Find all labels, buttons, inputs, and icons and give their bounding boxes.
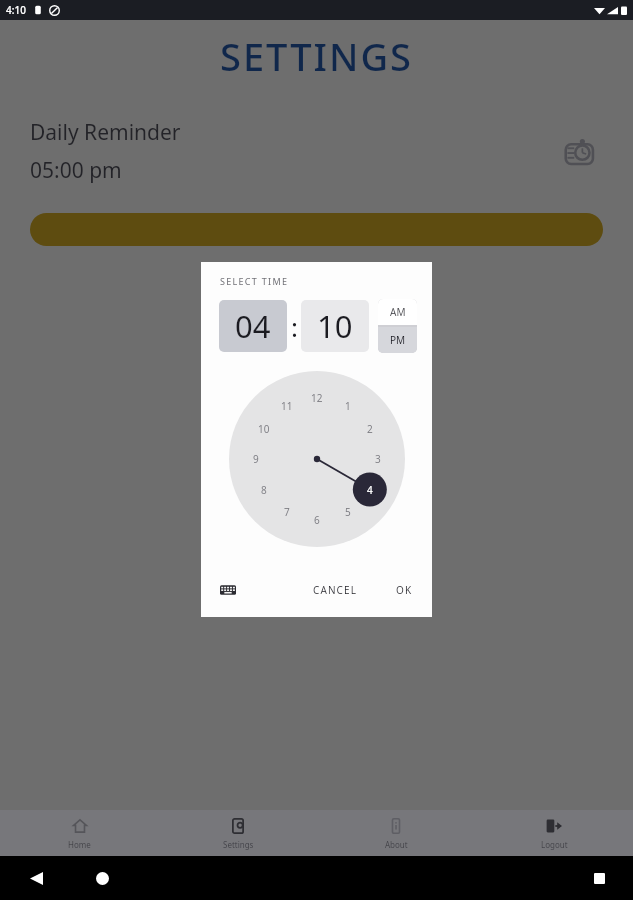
staticText: SETTINGS	[220, 30, 414, 82]
staticText: Settings	[223, 839, 254, 850]
staticText: 1	[345, 399, 351, 413]
staticText: Home	[68, 839, 91, 850]
staticText: 4	[367, 483, 373, 497]
staticText: 10	[317, 305, 353, 347]
button[interactable]: 04	[219, 300, 287, 352]
button[interactable]: Logout	[475, 810, 633, 856]
button[interactable]: Home	[0, 810, 159, 856]
button[interactable]: Switch to keyboard input	[217, 579, 239, 601]
staticText: SELECT TIME	[220, 275, 289, 287]
staticText: 05:00 pm	[30, 156, 122, 185]
button[interactable]	[30, 213, 603, 246]
staticText: AM	[390, 305, 406, 319]
staticText: 6	[314, 513, 320, 527]
staticText: 4:10	[6, 3, 26, 17]
staticText: 7	[284, 505, 290, 519]
button[interactable]: Recent apps	[587, 866, 611, 890]
staticText: Logout	[541, 839, 568, 850]
staticText: 3	[375, 452, 381, 466]
button[interactable]: CANCEL	[313, 583, 358, 597]
button[interactable]: Daily Reminder	[30, 112, 603, 190]
staticText: 2	[367, 422, 373, 436]
staticText: 8	[261, 483, 267, 497]
button[interactable]: About	[317, 810, 475, 856]
button[interactable]: AM	[378, 299, 417, 325]
staticText: 9	[253, 452, 259, 466]
staticText: Daily Reminder	[30, 118, 181, 147]
button[interactable]: PM	[378, 327, 417, 353]
button[interactable]: Home	[90, 866, 114, 890]
staticText: 12	[311, 391, 323, 405]
staticText: OK	[396, 583, 413, 597]
staticText: CANCEL	[313, 583, 358, 597]
button[interactable]: Back	[24, 866, 48, 890]
staticText: 04	[235, 305, 271, 347]
staticText: 10	[258, 422, 270, 436]
button[interactable]: Settings	[159, 810, 317, 856]
staticText: PM	[390, 333, 406, 347]
button[interactable]: OK	[396, 583, 413, 597]
button[interactable]: 10	[301, 300, 369, 352]
button[interactable]: Set reminder time	[557, 128, 603, 174]
staticText: :	[291, 309, 298, 344]
staticText: 11	[281, 399, 293, 413]
staticText: About	[385, 839, 408, 850]
staticText: 5	[345, 505, 351, 519]
